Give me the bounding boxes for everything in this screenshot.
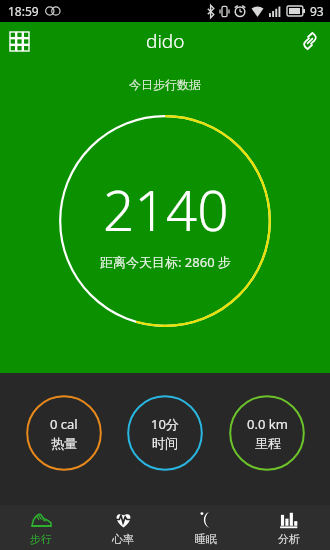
staticText: 分析 <box>278 532 300 546</box>
staticText: 距离今天目标: 2860 步 <box>100 253 231 271</box>
staticText: 10分 <box>151 415 179 433</box>
button[interactable]: 心率 <box>82 505 164 550</box>
button[interactable]: Menu <box>0 22 38 60</box>
staticText: 93 <box>310 3 324 19</box>
button[interactable]: 步行 <box>0 505 82 550</box>
staticText: 0 cal <box>50 415 78 433</box>
staticText: 0.0 km <box>247 415 288 433</box>
staticText: 里程 <box>255 435 281 451</box>
button[interactable]: 10分 <box>127 395 203 471</box>
staticText: 热量 <box>51 435 77 451</box>
staticText: 步行 <box>30 532 52 546</box>
staticText: 18:59 <box>8 3 39 19</box>
staticText: 今日步行数据 <box>129 77 201 92</box>
button[interactable]: 0.0 km <box>229 395 305 471</box>
staticText: 睡眠 <box>195 532 217 546</box>
staticText: dido <box>146 28 185 54</box>
staticText: 时间 <box>152 435 178 451</box>
button[interactable]: Link device <box>290 22 330 60</box>
button[interactable]: 0 cal <box>26 395 102 471</box>
staticText: 心率 <box>112 532 134 546</box>
staticText: 2140 <box>103 172 229 247</box>
button[interactable]: 分析 <box>247 505 330 550</box>
button[interactable]: 睡眠 <box>164 505 247 550</box>
